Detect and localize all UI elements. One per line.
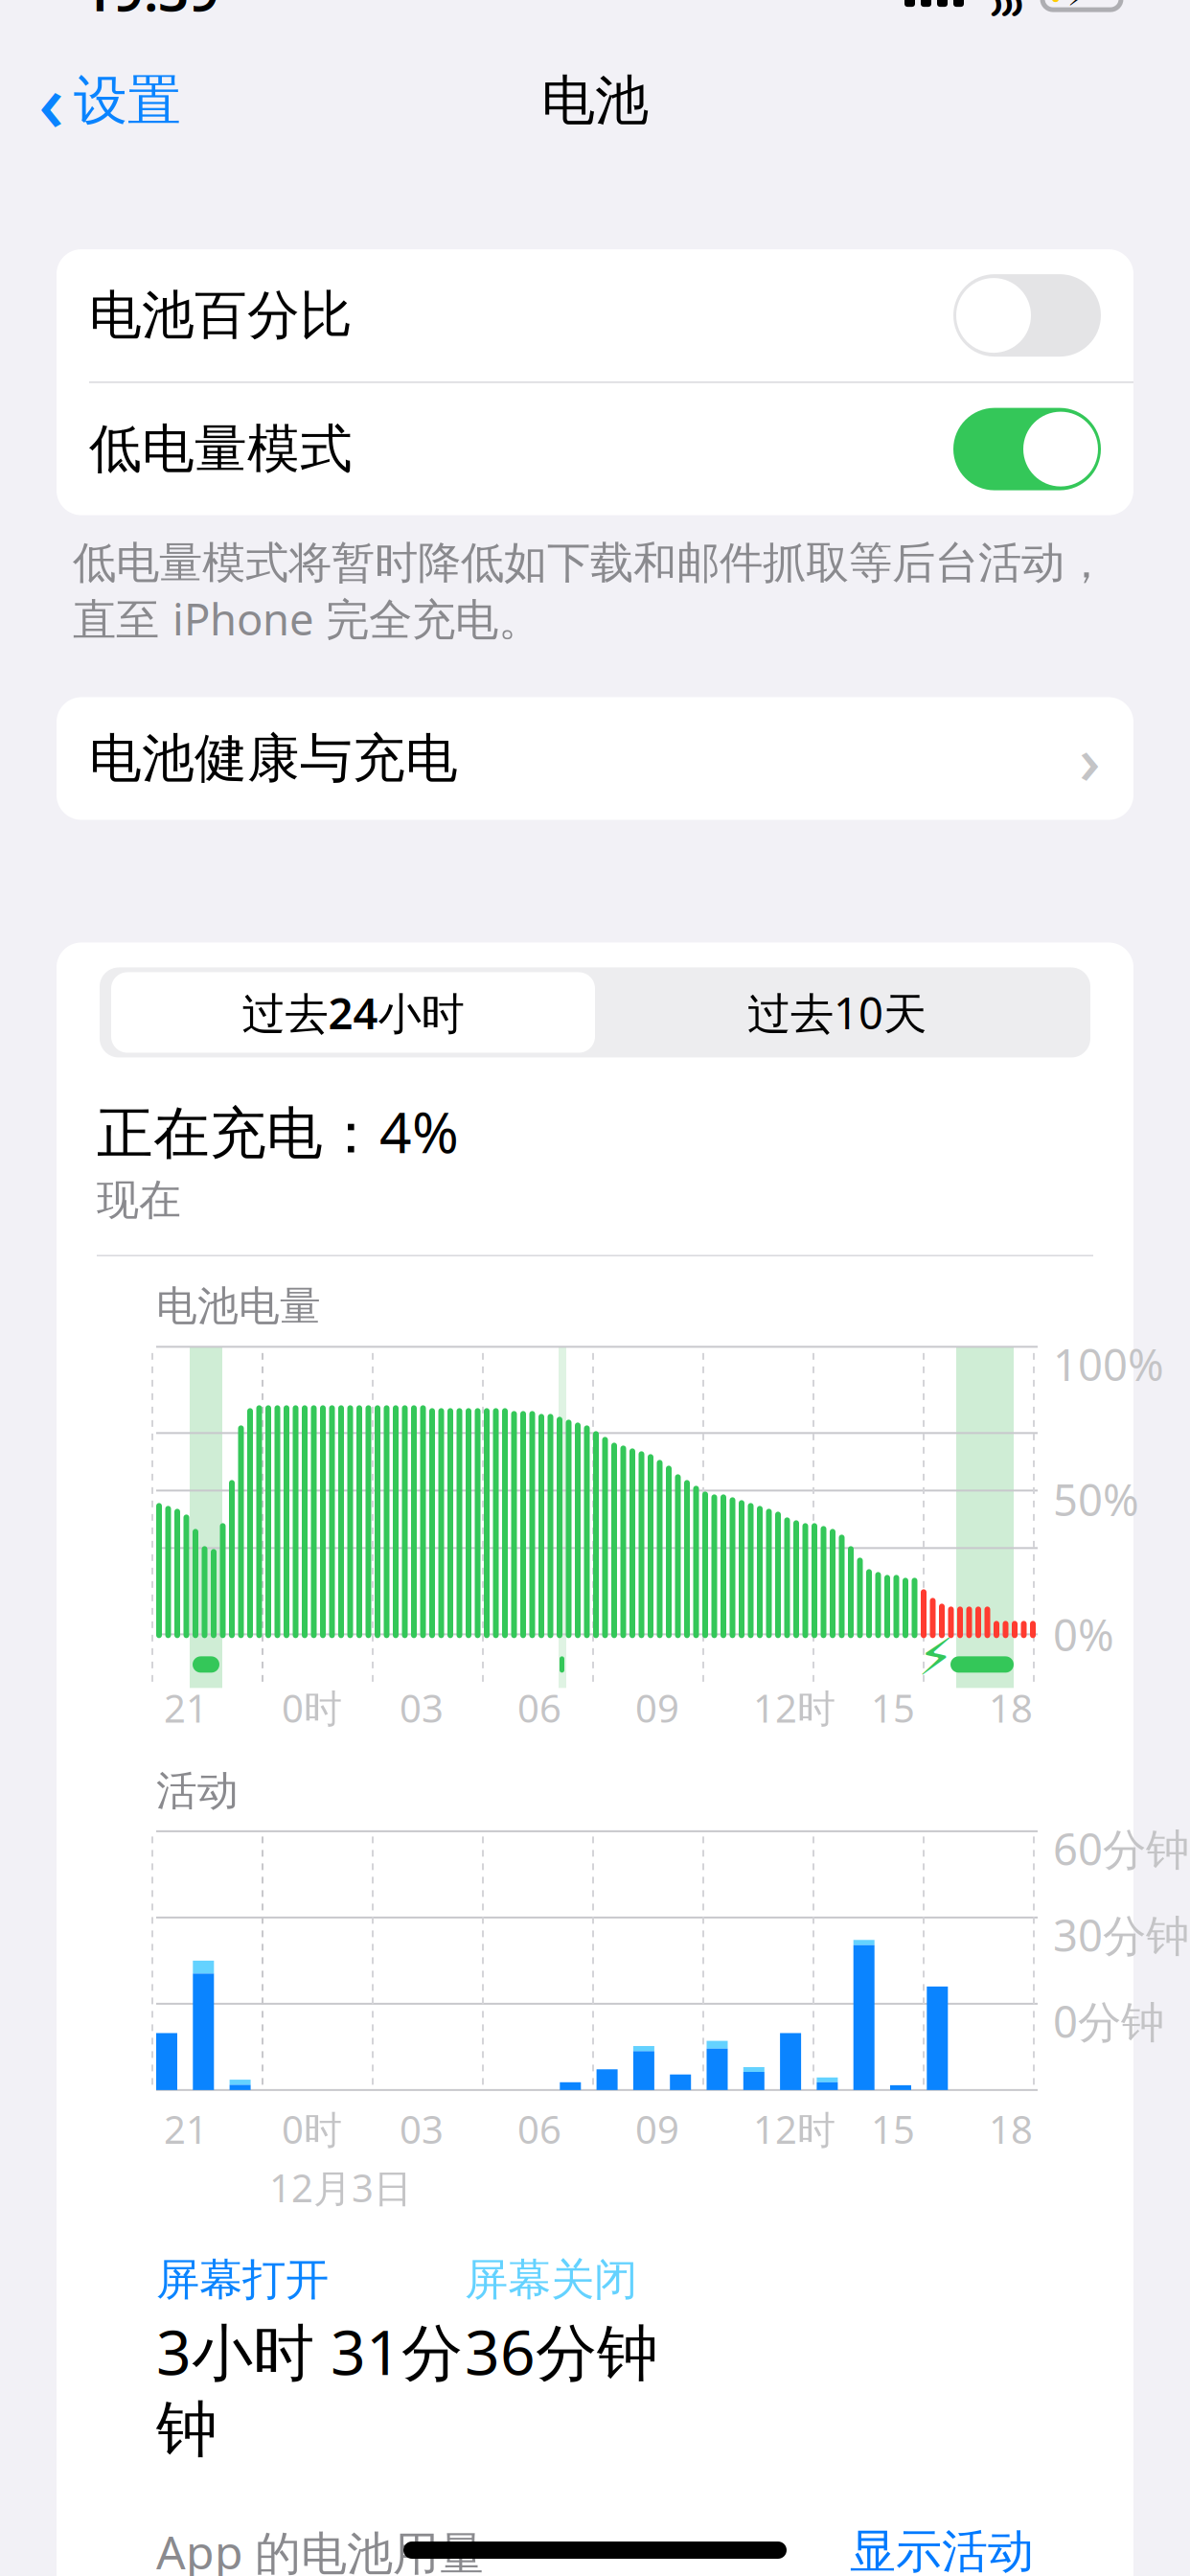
staticText: 低电量模式: [89, 417, 353, 481]
staticText: 03: [400, 2103, 444, 2154]
staticText: 低电量模式将暂时降低如下载和邮件抓取等后台活动， 直至 iPhone 完全充电。: [73, 536, 1108, 647]
staticText: 12月3日: [269, 2162, 412, 2213]
button[interactable]: 显示活动: [850, 2523, 1034, 2576]
staticText: 18: [989, 1682, 1033, 1733]
staticText: 0时: [282, 1682, 342, 1733]
staticText: ›: [1079, 714, 1101, 803]
staticText: ᯾: [984, 0, 1028, 24]
staticText: 过去10天: [747, 984, 927, 1041]
staticText: 正在充电：4%: [97, 1094, 459, 1169]
staticText: 电池: [541, 68, 649, 134]
button[interactable]: 电池健康与充电: [57, 697, 1133, 820]
staticText: App 的电池用量: [156, 2521, 485, 2576]
button[interactable]: 低电量模式: [57, 383, 1133, 515]
staticText: 03: [400, 1682, 444, 1733]
staticText: 0时: [282, 2103, 342, 2154]
staticText: 21: [164, 1682, 208, 1733]
staticText: 09: [635, 2103, 679, 2154]
staticText: 过去24小时: [242, 984, 464, 1041]
staticText: 60分钟: [1053, 1820, 1189, 1877]
staticText: 100%: [1053, 1335, 1164, 1393]
staticText: 06: [517, 1682, 561, 1733]
staticText: 15: [871, 2103, 915, 2154]
button[interactable]: 电池百分比: [57, 249, 1133, 382]
staticText: 设置: [74, 68, 181, 134]
staticText: ‹: [38, 48, 64, 153]
staticText: 12时: [753, 2103, 835, 2154]
staticText: 21: [164, 2103, 208, 2154]
staticText: ⚡︎: [1066, 0, 1097, 15]
staticText: 电池电量: [156, 1281, 321, 1331]
staticText: 36分钟: [465, 2310, 658, 2392]
button[interactable]: 过去10天: [595, 972, 1079, 1053]
staticText: 3小时 31分钟: [156, 2310, 463, 2467]
staticText: 现在: [97, 1174, 181, 1226]
staticText: 09: [635, 1682, 679, 1733]
staticText: 30分钟: [1053, 1906, 1189, 1964]
staticText: 电池健康与充电: [89, 726, 458, 791]
staticText: 0分钟: [1053, 1992, 1164, 2050]
staticText: 19:39: [82, 0, 219, 26]
staticText: 18: [989, 2103, 1033, 2154]
button[interactable]: ‹: [29, 58, 191, 144]
staticText: ⚡︎: [918, 1628, 953, 1686]
button[interactable]: 过去24小时: [111, 972, 595, 1053]
staticText: 活动: [156, 1766, 239, 1816]
staticText: 屏幕打开: [156, 2253, 329, 2307]
staticText: 50%: [1053, 1470, 1139, 1528]
staticText: 屏幕关闭: [465, 2253, 637, 2307]
staticText: 15: [871, 1682, 915, 1733]
staticText: 12时: [753, 1682, 835, 1733]
staticText: 0%: [1053, 1605, 1114, 1663]
staticText: 电池百分比: [89, 283, 353, 347]
staticText: 显示活动: [850, 2523, 1034, 2576]
staticText: 06: [517, 2103, 561, 2154]
